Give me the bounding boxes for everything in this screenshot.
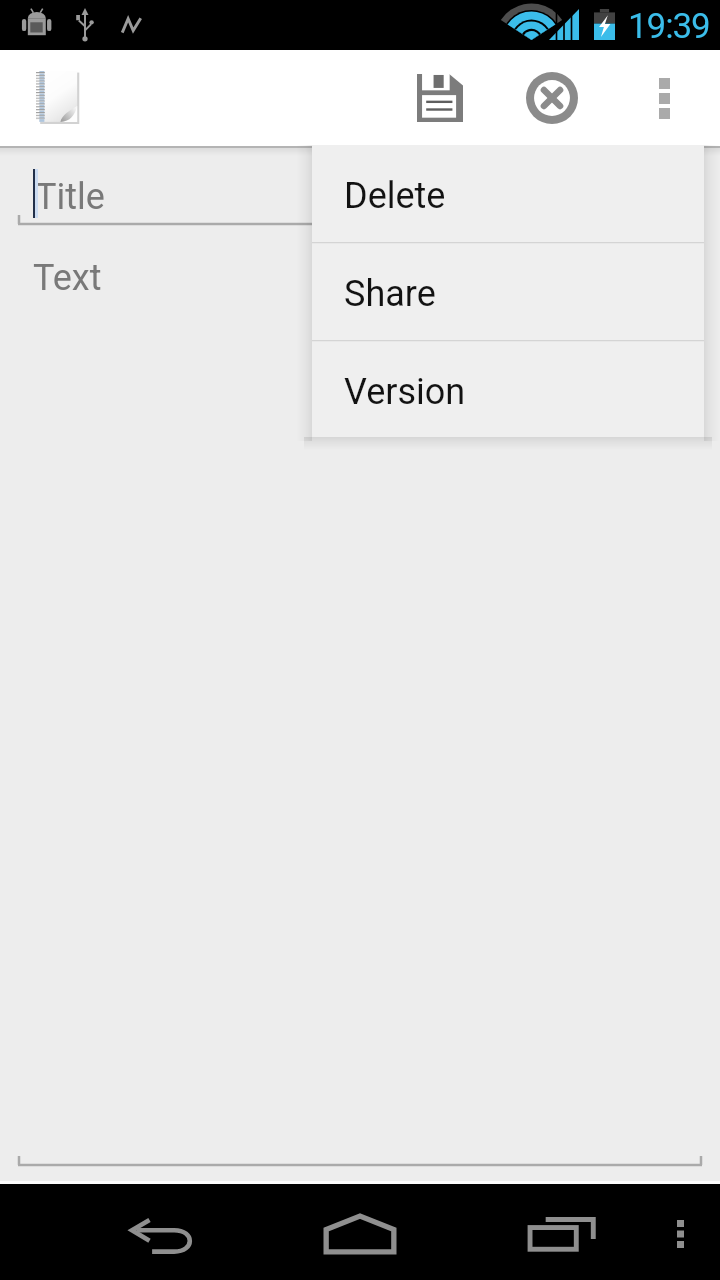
staticText: 19:39 bbox=[628, 6, 710, 47]
staticText: Share bbox=[344, 273, 436, 315]
button[interactable]: Cancel bbox=[504, 50, 600, 146]
button[interactable]: Version bbox=[312, 342, 704, 437]
button[interactable]: Home bbox=[312, 1184, 408, 1280]
button[interactable]: Share bbox=[312, 244, 704, 340]
staticText: Text bbox=[33, 257, 102, 299]
button[interactable]: Delete bbox=[312, 145, 704, 242]
staticText: Version bbox=[344, 371, 466, 413]
button[interactable]: Save bbox=[392, 50, 488, 146]
button[interactable]: More options bbox=[616, 50, 712, 146]
staticText: Title bbox=[35, 176, 105, 218]
staticText: Delete bbox=[344, 175, 446, 217]
button[interactable]: Title bbox=[0, 152, 720, 226]
button[interactable]: Notepad bbox=[8, 50, 104, 146]
button[interactable]: More options bbox=[632, 1184, 720, 1280]
button[interactable]: Text bbox=[0, 232, 720, 1162]
button[interactable]: Back bbox=[112, 1184, 208, 1280]
button[interactable]: Recent apps bbox=[512, 1184, 608, 1280]
